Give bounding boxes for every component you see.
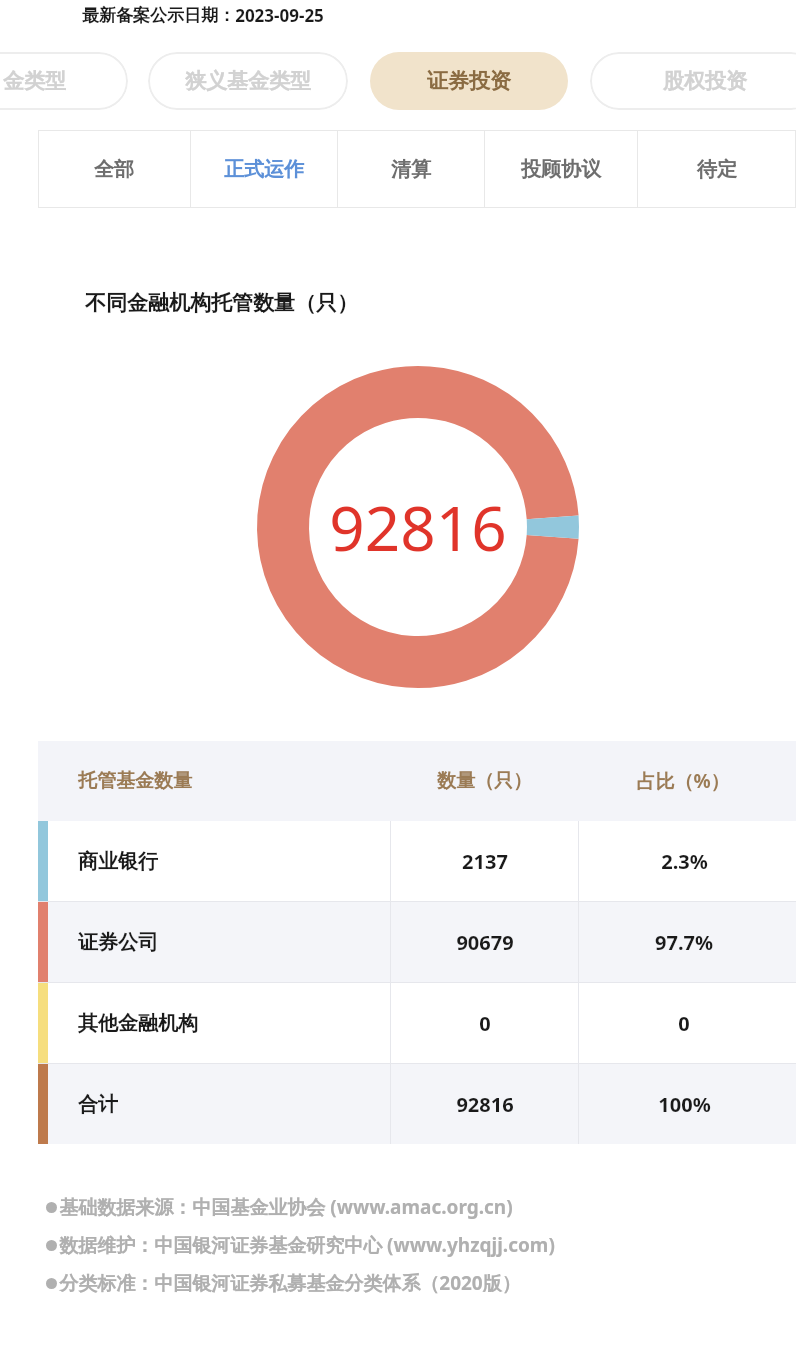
staticText: 商业银行: [78, 849, 158, 874]
button[interactable]: 其他金融机构: [38, 983, 796, 1063]
staticText: 投顾协议: [521, 157, 601, 182]
staticText: 数据维护：中国银河证券基金研究中心 (www.yhzqjj.com): [59, 1232, 555, 1258]
staticText: 待定: [697, 157, 737, 182]
button[interactable]: 证券投资: [370, 52, 568, 110]
staticText: 基础数据来源：中国基金业协会 (www.amac.org.cn): [59, 1194, 513, 1220]
staticText: 分类标准：中国银河证券私募基金分类体系（2020版）: [59, 1270, 521, 1296]
staticText: 金类型: [3, 68, 66, 94]
staticText: 2023-09-25: [235, 4, 324, 27]
button[interactable]: 全部: [38, 130, 190, 208]
staticText: 0: [678, 1010, 690, 1037]
staticText: 证券公司: [78, 930, 158, 955]
staticText: 正式运作: [224, 157, 304, 182]
staticText: 92816: [456, 1091, 514, 1118]
staticText: 0: [479, 1010, 491, 1037]
button[interactable]: 合计: [38, 1064, 796, 1144]
staticText: 狭义基金类型: [185, 68, 311, 94]
staticText: 其他金融机构: [78, 1011, 198, 1036]
button[interactable]: 金类型: [0, 52, 128, 110]
button[interactable]: 待定: [638, 130, 796, 208]
button[interactable]: 正式运作: [191, 130, 337, 208]
staticText: 全部: [94, 157, 134, 182]
button[interactable]: 狭义基金类型: [148, 52, 348, 110]
staticText: 100%: [658, 1091, 711, 1118]
staticText: 不同金融机构托管数量（只）: [85, 290, 358, 316]
staticText: 数量（只）: [437, 769, 532, 793]
staticText: 97.7%: [655, 929, 713, 956]
button[interactable]: 证券公司: [38, 902, 796, 982]
staticText: 2137: [462, 848, 508, 875]
button[interactable]: 清算: [338, 130, 484, 208]
staticText: 托管基金数量: [78, 769, 192, 793]
staticText: 2.3%: [661, 848, 708, 875]
staticText: 92816: [329, 485, 507, 569]
staticText: 合计: [78, 1092, 118, 1117]
staticText: 占比（%）: [636, 768, 730, 794]
staticText: 清算: [391, 157, 431, 182]
staticText: 股权投资: [663, 68, 747, 94]
staticText: 证券投资: [427, 68, 511, 94]
button[interactable]: 投顾协议: [485, 130, 637, 208]
button[interactable]: 商业银行: [38, 821, 796, 901]
button[interactable]: 股权投资: [590, 52, 796, 110]
staticText: 90679: [456, 929, 514, 956]
staticText: 最新备案公示日期：: [82, 5, 235, 26]
